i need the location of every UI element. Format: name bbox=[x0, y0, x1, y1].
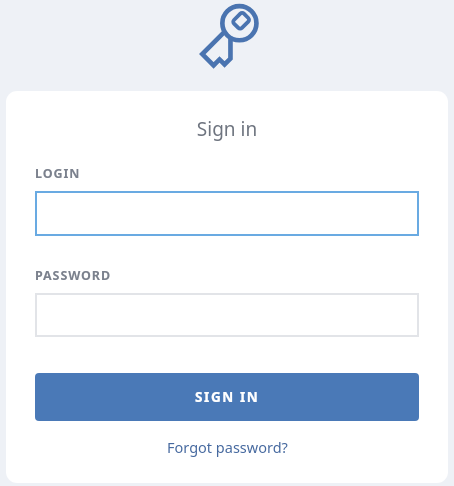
staticText: SIGN IN bbox=[195, 388, 260, 406]
staticText: PASSWORD bbox=[35, 267, 111, 284]
button[interactable] bbox=[35, 293, 419, 337]
button[interactable]: SIGN IN bbox=[35, 373, 419, 421]
other: Key bbox=[196, 5, 258, 69]
staticText: Forgot password? bbox=[167, 437, 288, 457]
staticText: Sign in bbox=[6, 116, 448, 142]
button[interactable]: Forgot password? bbox=[161, 434, 294, 460]
staticText: LOGIN bbox=[35, 165, 81, 182]
button[interactable] bbox=[35, 191, 419, 236]
